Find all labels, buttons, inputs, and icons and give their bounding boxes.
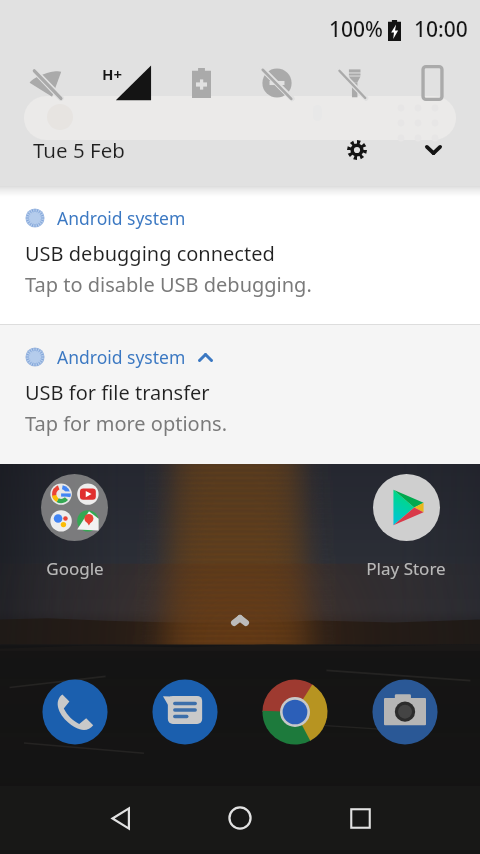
button[interactable]: Phone [40, 677, 110, 747]
button[interactable]: Google folder [41, 474, 108, 541]
button[interactable]: Play Store [373, 474, 440, 541]
staticText: Android system [57, 206, 186, 230]
button[interactable]: Mobile data [99, 56, 155, 104]
button[interactable]: Back [84, 786, 156, 850]
staticText: USB for file transfer [25, 379, 210, 406]
button[interactable]: Messages [150, 677, 220, 747]
staticText: 10:00 [414, 15, 468, 44]
button[interactable]: Home [204, 786, 276, 850]
button[interactable]: Expand quick settings [411, 128, 455, 172]
button[interactable]: Android system [0, 186, 480, 324]
staticText: Tap to disable USB debugging. [25, 271, 312, 298]
staticText: Tap for more options. [25, 410, 227, 437]
button[interactable]: Wi-Fi off [24, 59, 72, 107]
staticText: Android system [57, 345, 186, 369]
button[interactable]: Camera [370, 677, 440, 747]
staticText: Play Store [358, 557, 454, 580]
staticText: H+ [102, 64, 123, 84]
button[interactable]: Recent apps [324, 786, 396, 850]
button[interactable]: Do not disturb off [253, 59, 301, 107]
staticText: 100% [329, 15, 383, 44]
button[interactable]: Screen rotation [408, 59, 456, 107]
button[interactable]: Settings [335, 128, 379, 172]
staticText: USB debugging connected [25, 240, 275, 267]
button[interactable]: Open app drawer [222, 607, 258, 633]
staticText: Tue 5 Feb [33, 136, 125, 164]
button[interactable]: Flashlight off [329, 59, 377, 107]
staticText: Google [27, 557, 123, 580]
button[interactable]: Battery saver [177, 59, 225, 107]
button[interactable]: Chrome [260, 677, 330, 747]
button[interactable]: Android system [0, 325, 480, 464]
